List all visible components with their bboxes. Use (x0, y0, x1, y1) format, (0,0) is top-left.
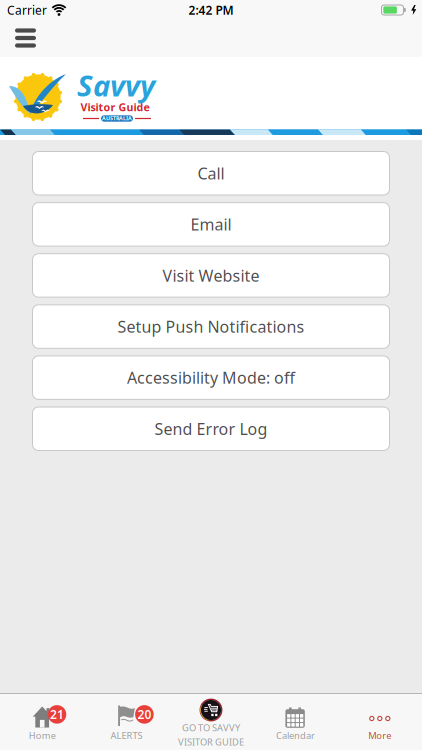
staticText: VISITOR GUIDE (178, 736, 244, 748)
button[interactable]: Email (32, 203, 389, 246)
staticText: Carrier (7, 2, 47, 18)
staticText: 2:42 PM (188, 2, 233, 18)
staticText: AUSTRALIA (102, 115, 132, 122)
staticText: Savvy (77, 65, 155, 104)
button[interactable]: Accessibility Mode: off (32, 356, 389, 399)
staticText: Calendar (276, 729, 315, 742)
staticText: GO TO SAVVY (182, 721, 240, 734)
staticText: Accessibility Mode: off (127, 367, 295, 388)
staticText: More (368, 729, 391, 742)
button[interactable]: Send Error Log (32, 407, 389, 450)
staticText: Email (190, 214, 231, 235)
button[interactable]: More (338, 694, 422, 750)
staticText: ALERTS (111, 729, 143, 742)
button[interactable]: 21 (0, 694, 84, 750)
button[interactable]: Calendar (253, 694, 338, 750)
button[interactable]: Menu (0, 20, 46, 57)
button[interactable]: Go to Savvy Visitor Guide (169, 694, 253, 750)
staticText: Send Error Log (154, 418, 267, 439)
button[interactable]: 20 (84, 694, 169, 750)
staticText: 21 (50, 706, 64, 722)
staticText: Setup Push Notifications (117, 316, 304, 337)
button[interactable]: Call (32, 151, 389, 195)
staticText: Call (197, 163, 224, 184)
staticText: 20 (137, 706, 151, 722)
staticText: Visitor Guide (80, 100, 149, 114)
button[interactable]: Visit Website (32, 254, 389, 297)
button[interactable]: Setup Push Notifications (32, 305, 389, 348)
staticText: Visit Website (162, 265, 259, 286)
staticText: Home (29, 729, 56, 742)
